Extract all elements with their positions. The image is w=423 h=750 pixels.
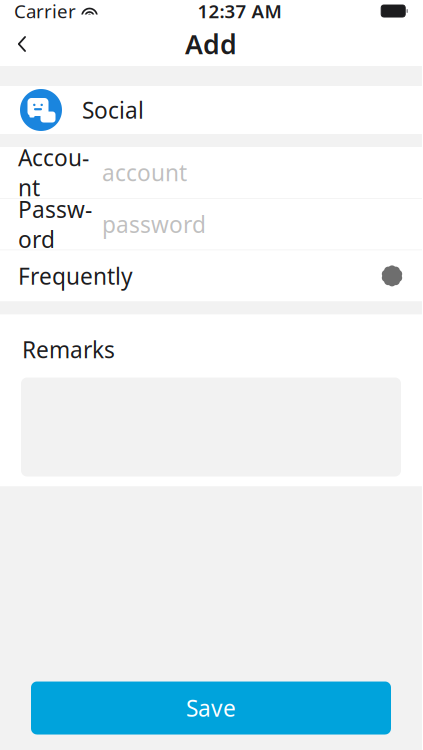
button[interactable]: Account xyxy=(0,147,422,198)
staticText: 12:37 AM xyxy=(198,0,282,23)
button[interactable]: Save xyxy=(31,681,391,734)
staticText: Social xyxy=(82,95,144,125)
staticText: Remarks xyxy=(22,334,115,364)
button[interactable]: Social xyxy=(0,86,422,134)
staticText: Save xyxy=(186,693,236,723)
staticText: account xyxy=(102,157,187,187)
staticText: password xyxy=(102,209,206,239)
staticText: Password xyxy=(18,194,92,254)
button[interactable]: Frequently xyxy=(0,250,422,301)
staticText: Add xyxy=(185,26,237,62)
staticText: Account xyxy=(18,142,89,203)
button[interactable]: Password xyxy=(0,199,422,250)
staticText: Frequently xyxy=(18,261,133,291)
staticText: Carrier xyxy=(14,0,76,23)
button[interactable]: Back xyxy=(0,22,44,66)
